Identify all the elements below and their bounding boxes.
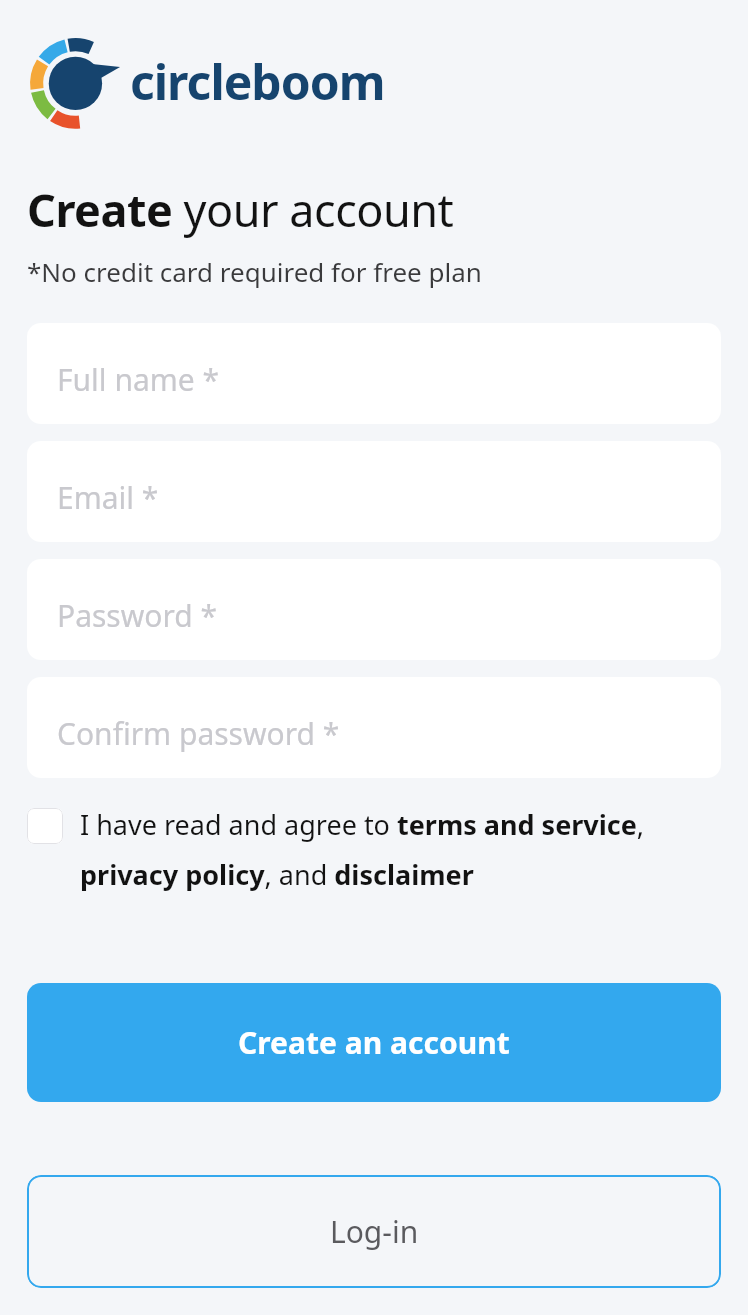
button[interactable]: Password * [27,559,721,660]
button[interactable]: Create an account [27,983,721,1102]
staticText: circleboom [130,49,385,114]
button[interactable]: Full name * [27,323,721,424]
staticText: Full name * [57,359,220,400]
staticText: Email * [57,477,159,518]
button[interactable]: Agree to terms checkbox [27,806,721,893]
staticText: Create an account [238,1022,510,1063]
button[interactable]: Email * [27,441,721,542]
staticText: Create your account [27,179,454,240]
button[interactable]: Confirm password * [27,677,721,778]
button[interactable]: Log-in [27,1175,721,1288]
other: Agree to terms checkbox [27,808,63,844]
staticText: *No credit card required for free plan [27,254,482,289]
staticText: I have read and agree to terms and servi… [80,806,721,893]
staticText: Password * [57,595,218,636]
staticText: Log-in [330,1211,419,1252]
staticText: Confirm password * [57,713,340,754]
